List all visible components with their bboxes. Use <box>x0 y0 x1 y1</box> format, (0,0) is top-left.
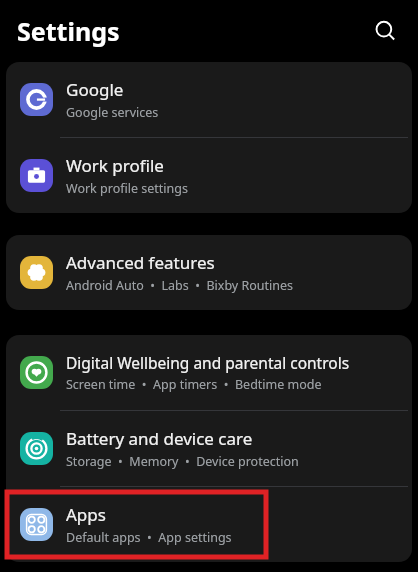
button[interactable]: Battery and device care <box>6 411 412 486</box>
button[interactable]: Google <box>6 62 412 137</box>
button[interactable]: Work profile <box>6 138 412 213</box>
staticText: Storage • Memory • Device protection <box>66 453 299 470</box>
button[interactable]: Apps <box>6 487 412 562</box>
staticText: Work profile <box>66 154 164 177</box>
staticText: Digital Wellbeing and parental controls <box>66 352 350 373</box>
staticText: Google <box>66 78 124 101</box>
staticText: Android Auto • Labs • Bixby Routines <box>66 277 294 294</box>
staticText: Work profile settings <box>66 180 188 197</box>
staticText: Default apps • App settings <box>66 529 232 546</box>
staticText: Apps <box>66 503 106 526</box>
staticText: Settings <box>17 14 120 48</box>
staticText: Advanced features <box>66 251 215 274</box>
button[interactable]: Digital Wellbeing and parental controls <box>6 335 412 410</box>
staticText: Battery and device care <box>66 427 253 450</box>
staticText: Screen time • App timers • Bedtime mode <box>66 376 322 393</box>
button[interactable]: Search settings <box>363 9 407 53</box>
button[interactable]: Advanced features <box>6 235 412 310</box>
staticText: Google services <box>66 104 159 121</box>
